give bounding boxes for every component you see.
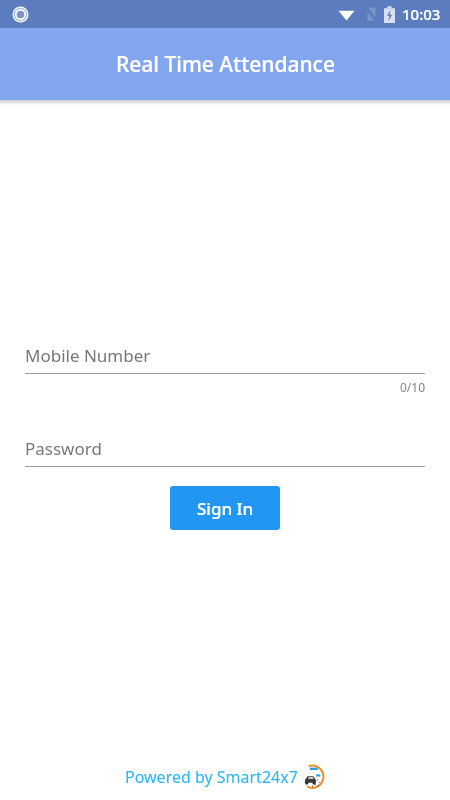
button[interactable]: Mobile Number: [25, 337, 425, 373]
staticText: Powered by Smart24x7: [125, 766, 298, 788]
staticText: 10:03: [402, 4, 441, 24]
staticText: Sign In: [197, 497, 254, 520]
staticText: Mobile Number: [25, 344, 151, 367]
staticText: 0/10: [399, 379, 425, 395]
button[interactable]: Sign In: [170, 486, 280, 530]
other: Smart24x7 logo: [299, 764, 325, 790]
button[interactable]: Password: [25, 430, 425, 466]
button[interactable]: Powered by Smart24x7: [0, 760, 450, 794]
staticText: Password: [25, 437, 102, 460]
staticText: Real Time Attendance: [116, 50, 335, 79]
